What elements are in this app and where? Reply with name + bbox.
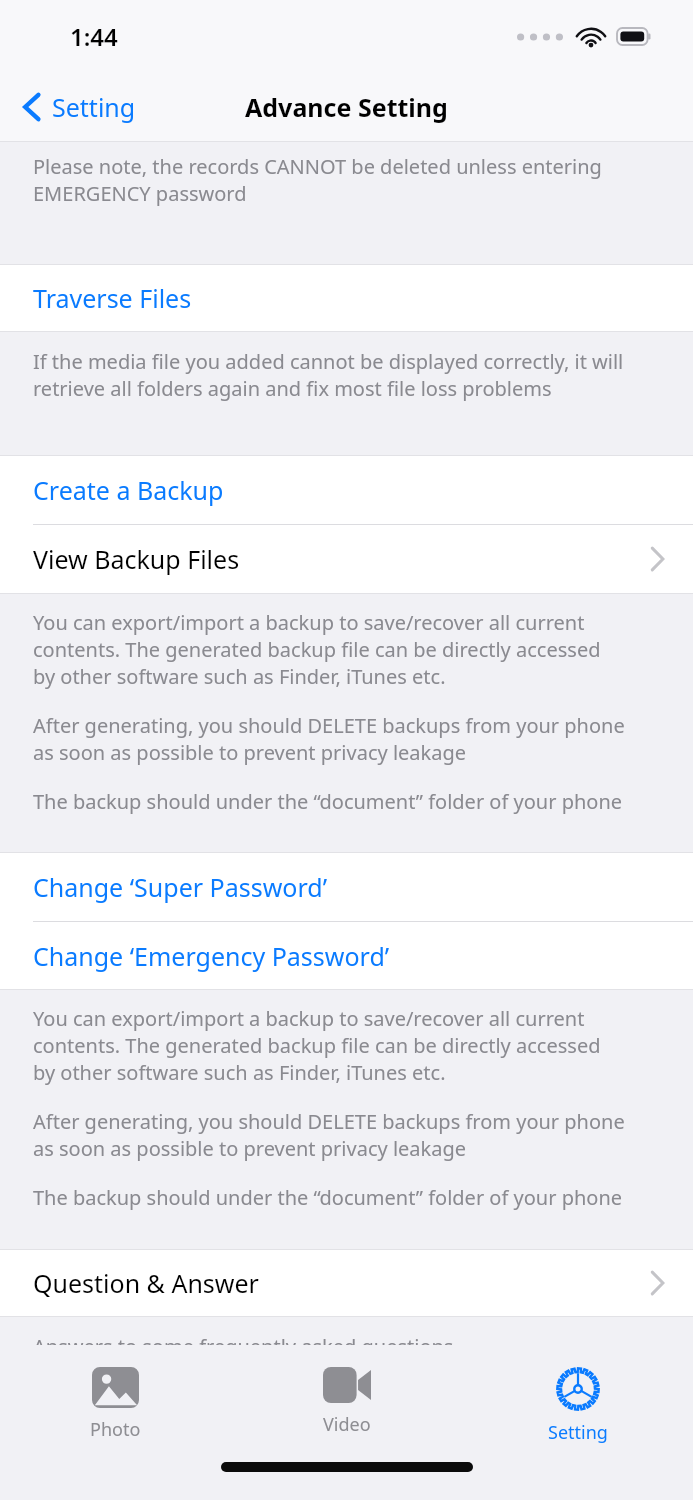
staticText: Please note, the records CANNOT be delet… bbox=[33, 153, 649, 207]
staticText: Video bbox=[323, 1412, 371, 1437]
button[interactable]: Create a Backup bbox=[0, 456, 693, 524]
staticText: Change ‘Emergency Password’ bbox=[33, 939, 390, 973]
button[interactable]: Question & Answer bbox=[0, 1250, 693, 1316]
button[interactable]: Setting bbox=[0, 72, 152, 142]
staticText: Question & Answer bbox=[33, 1266, 259, 1300]
staticText: Setting bbox=[548, 1420, 608, 1445]
button[interactable]: Photo bbox=[0, 1345, 231, 1451]
staticText: Photo bbox=[90, 1417, 141, 1442]
staticText: After generating, you should DELETE back… bbox=[33, 712, 649, 766]
staticText: Change ‘Super Password’ bbox=[33, 870, 328, 904]
button[interactable]: Video bbox=[231, 1345, 462, 1451]
staticText: Advance Setting bbox=[245, 90, 448, 124]
staticText: Traverse Files bbox=[33, 281, 192, 315]
button[interactable]: View Backup Files bbox=[0, 525, 693, 593]
staticText: You can export/import a backup to save/r… bbox=[33, 1005, 649, 1086]
staticText: After generating, you should DELETE back… bbox=[33, 1108, 649, 1162]
staticText: 1:44 bbox=[70, 20, 118, 53]
button[interactable]: Setting bbox=[462, 1345, 693, 1451]
button[interactable]: Change ‘Super Password’ bbox=[0, 853, 693, 921]
staticText: The backup should under the “document” f… bbox=[33, 788, 649, 815]
staticText: Create a Backup bbox=[33, 473, 224, 507]
staticText: The backup should under the “document” f… bbox=[33, 1184, 649, 1211]
staticText: If the media file you added cannot be di… bbox=[33, 348, 649, 402]
button[interactable]: Traverse Files bbox=[0, 265, 693, 331]
staticText: Answers to some frequently asked questio… bbox=[33, 1333, 649, 1345]
staticText: View Backup Files bbox=[33, 542, 240, 576]
staticText: Setting bbox=[52, 90, 136, 124]
button[interactable]: Change ‘Emergency Password’ bbox=[0, 922, 693, 989]
staticText: You can export/import a backup to save/r… bbox=[33, 609, 649, 690]
